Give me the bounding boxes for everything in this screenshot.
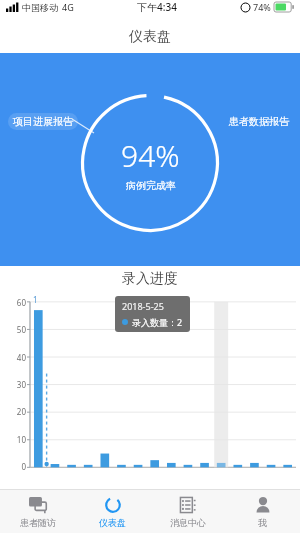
staticText: 60 xyxy=(16,297,26,308)
staticText: 2018-5-25 xyxy=(122,300,164,312)
staticText: 74% xyxy=(253,1,271,13)
button[interactable]: 仪表盘 xyxy=(75,490,150,533)
staticText: 仪表盘 xyxy=(99,517,126,528)
staticText: 10 xyxy=(16,434,26,445)
staticText: 录入数量：2 xyxy=(132,316,183,328)
staticText: 患者数据报告 xyxy=(229,115,289,128)
staticText: 消息中心 xyxy=(170,517,206,528)
staticText: 病例完成率 xyxy=(126,179,176,192)
staticText: 录入进度 xyxy=(122,270,178,288)
staticText: 94% xyxy=(121,135,180,176)
staticText: 50 xyxy=(16,324,26,335)
staticText: 仪表盘 xyxy=(129,28,171,46)
staticText: 我 xyxy=(258,517,267,528)
staticText: 30 xyxy=(16,379,26,390)
button[interactable]: 消息中心 xyxy=(150,490,225,533)
button[interactable]: 我 xyxy=(225,490,300,533)
staticText: 40 xyxy=(16,352,26,363)
staticText: 下午4:34 xyxy=(137,0,177,14)
button[interactable]: 项目进展报告 xyxy=(8,113,78,130)
staticText: 0 xyxy=(21,461,26,472)
staticText: 患者随访 xyxy=(20,517,56,528)
staticText: 1 xyxy=(33,294,38,305)
staticText: 项目进展报告 xyxy=(13,115,73,128)
staticText: 20 xyxy=(16,406,26,417)
staticText: 4G xyxy=(62,1,74,13)
button[interactable]: 患者随访 xyxy=(0,490,75,533)
button[interactable]: 患者数据报告 xyxy=(226,113,292,130)
button[interactable]: 2018-5-25 xyxy=(115,296,190,332)
staticText: 中国移动 xyxy=(22,2,58,13)
